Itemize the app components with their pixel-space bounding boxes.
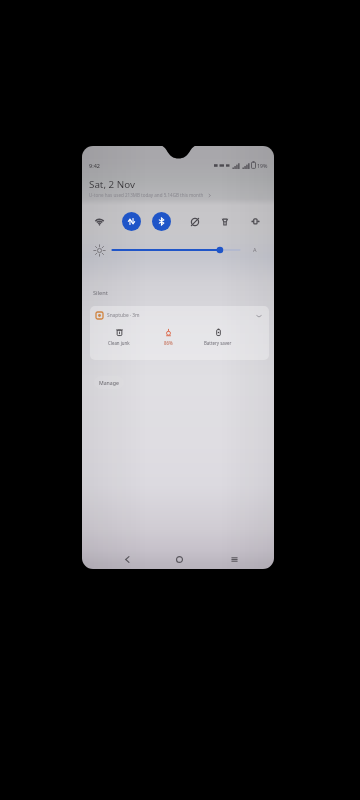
staticText: Manage (99, 379, 119, 386)
button[interactable]: Expand notification (254, 311, 264, 321)
staticText: 9:42 (89, 162, 100, 169)
staticText: 19% (257, 162, 268, 169)
button[interactable]: Manage (94, 376, 124, 389)
button[interactable]: Clean junk (97, 328, 141, 346)
button[interactable]: 86% (146, 328, 190, 346)
button[interactable]: Recent apps (222, 548, 246, 569)
staticText: 86% (164, 340, 173, 346)
button[interactable]: Battery saver (246, 212, 265, 231)
button[interactable]: Bluetooth (152, 212, 171, 231)
button[interactable] (111, 245, 241, 255)
staticText: Snaptube · 3m (107, 312, 140, 319)
button[interactable]: Auto rotate (185, 212, 204, 231)
button[interactable]: Battery saver (196, 328, 240, 346)
button[interactable]: U-tone has used 213MB today and 5.14GB t… (89, 192, 212, 198)
button[interactable]: Home (167, 548, 191, 569)
staticText: Clean junk (108, 340, 130, 346)
button[interactable]: Snaptube · 3m (90, 306, 269, 360)
button[interactable]: Flashlight (215, 212, 234, 231)
staticText: Sat, 2 Nov (89, 178, 135, 191)
staticText: Silent (93, 289, 108, 297)
button[interactable]: Mobile data (122, 212, 141, 231)
staticText: U-tone has used 213MB today and 5.14GB t… (89, 192, 204, 198)
staticText: A (253, 246, 257, 253)
button[interactable]: Back (115, 548, 139, 569)
button[interactable]: Wi-Fi (90, 212, 109, 231)
staticText: Battery saver (204, 340, 232, 346)
